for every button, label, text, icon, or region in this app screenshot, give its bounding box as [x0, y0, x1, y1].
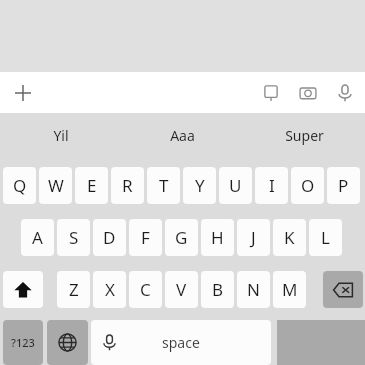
staticText: R — [122, 174, 133, 197]
button[interactable]: T — [147, 167, 180, 204]
button[interactable]: K — [273, 219, 306, 256]
button[interactable]: W — [39, 167, 72, 204]
staticText: F — [141, 226, 150, 249]
button[interactable]: Q — [3, 167, 36, 204]
staticText: W — [48, 174, 64, 197]
button[interactable]: B — [201, 271, 234, 308]
button[interactable]: Stickers — [256, 78, 285, 107]
staticText: Aaa — [170, 126, 195, 145]
button[interactable]: D — [93, 219, 126, 256]
staticText: B — [212, 278, 224, 301]
button[interactable]: J — [237, 219, 270, 256]
button[interactable]: P — [327, 167, 360, 204]
button[interactable]: Y — [183, 167, 216, 204]
staticText: space — [162, 333, 200, 352]
button[interactable]: A — [21, 219, 54, 256]
staticText: Super — [285, 126, 324, 145]
staticText: ?123 — [11, 335, 35, 350]
staticText: T — [159, 174, 169, 197]
button[interactable]: Camera — [293, 78, 322, 107]
button[interactable]: Super — [243, 113, 365, 157]
staticText: P — [338, 174, 349, 197]
staticText: J — [251, 226, 256, 249]
button[interactable]: H — [201, 219, 234, 256]
button[interactable]: Symbols — [3, 320, 43, 365]
button[interactable]: I — [255, 167, 288, 204]
button[interactable]: N — [237, 271, 270, 308]
button[interactable]: Z — [57, 271, 90, 308]
button[interactable]: X — [93, 271, 126, 308]
button[interactable]: Add — [8, 78, 37, 107]
button[interactable]: Aaa — [121, 113, 243, 157]
button[interactable]: S — [57, 219, 90, 256]
button[interactable]: F — [129, 219, 162, 256]
button[interactable]: Change language — [47, 320, 88, 365]
staticText: V — [176, 278, 187, 301]
staticText: U — [229, 174, 242, 197]
button[interactable]: G — [165, 219, 198, 256]
button[interactable]: space — [91, 320, 271, 365]
button[interactable]: L — [309, 219, 342, 256]
staticText: N — [247, 278, 260, 301]
button[interactable]: E — [75, 167, 108, 204]
staticText: X — [105, 278, 115, 301]
staticText: C — [140, 278, 151, 301]
staticText: E — [87, 174, 97, 197]
staticText: Q — [13, 174, 27, 197]
staticText: A — [32, 226, 43, 249]
staticText: D — [103, 226, 116, 249]
staticText: S — [69, 226, 79, 249]
staticText: H — [211, 226, 224, 249]
staticText: K — [284, 226, 295, 249]
button[interactable]: O — [291, 167, 324, 204]
staticText: O — [301, 174, 315, 197]
button[interactable]: R — [111, 167, 144, 204]
staticText: Z — [69, 278, 79, 301]
button[interactable]: V — [165, 271, 198, 308]
staticText: Yil — [53, 126, 69, 145]
staticText: L — [321, 226, 330, 249]
staticText: I — [269, 174, 275, 197]
button[interactable]: M — [273, 271, 306, 308]
staticText: M — [282, 278, 298, 301]
button[interactable]: Shift — [3, 271, 43, 308]
button[interactable]: C — [129, 271, 162, 308]
staticText: G — [175, 226, 188, 249]
button[interactable]: Backspace — [323, 271, 363, 308]
button[interactable]: Voice input — [330, 78, 359, 107]
staticText: Y — [195, 174, 205, 197]
button[interactable]: U — [219, 167, 252, 204]
button[interactable]: Yil — [0, 113, 121, 157]
